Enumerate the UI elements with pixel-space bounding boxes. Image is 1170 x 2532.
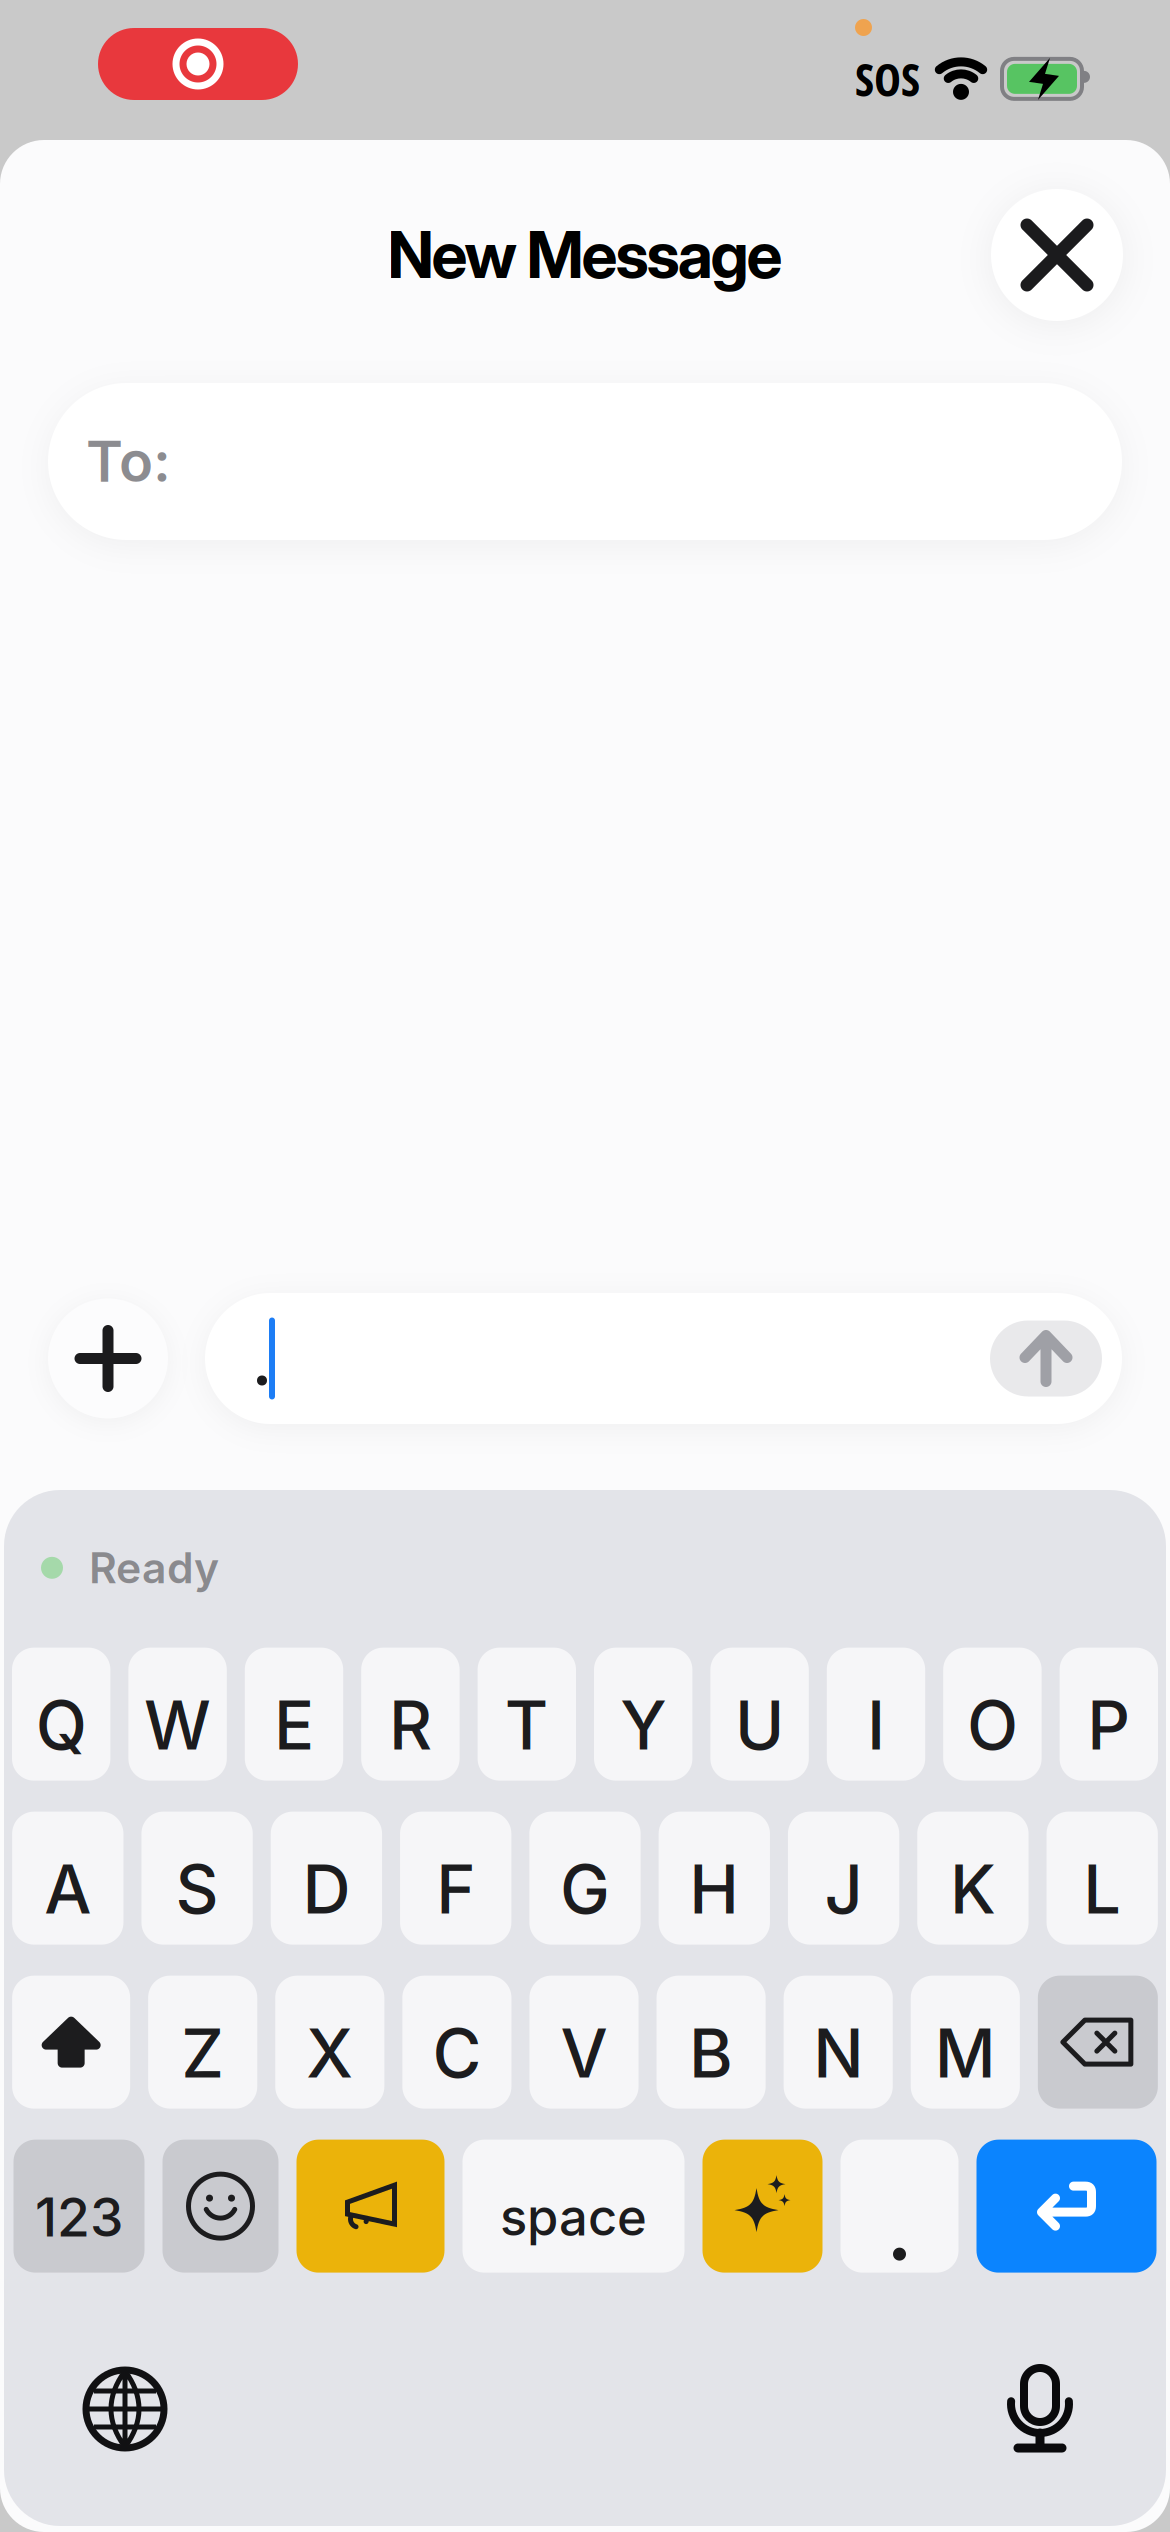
- button[interactable]: [98, 28, 298, 100]
- staticText: N: [813, 2013, 863, 2093]
- staticText: O: [967, 1685, 1018, 1765]
- staticText: U: [735, 1685, 784, 1765]
- button[interactable]: S: [141, 1812, 253, 1945]
- button[interactable]: [1038, 1976, 1158, 2109]
- button[interactable]: A: [12, 1812, 123, 1945]
- button[interactable]: G: [529, 1812, 641, 1945]
- button[interactable]: U: [710, 1648, 809, 1781]
- staticText: H: [689, 1849, 739, 1929]
- button[interactable]: W: [128, 1648, 227, 1781]
- button[interactable]: [990, 1320, 1102, 1396]
- button[interactable]: B: [657, 1976, 766, 2109]
- staticText: Q: [36, 1685, 87, 1765]
- button[interactable]: 123: [13, 2140, 144, 2273]
- staticText: M: [935, 2013, 996, 2093]
- staticText: D: [302, 1849, 350, 1929]
- button[interactable]: Y: [594, 1648, 692, 1781]
- staticText: I: [867, 1685, 885, 1765]
- button[interactable]: [162, 2140, 278, 2273]
- staticText: F: [436, 1849, 475, 1929]
- button[interactable]: [702, 2140, 822, 2273]
- staticText: W: [144, 1685, 211, 1765]
- button[interactable]: [12, 1976, 130, 2109]
- staticText: T: [505, 1685, 549, 1765]
- staticText: S: [176, 1849, 219, 1929]
- button[interactable]: M: [911, 1976, 1020, 2109]
- button[interactable]: X: [275, 1976, 384, 2109]
- button[interactable]: E: [245, 1648, 343, 1781]
- button[interactable]: J: [788, 1812, 899, 1945]
- staticText: A: [44, 1849, 91, 1929]
- staticText: J: [825, 1849, 863, 1929]
- button[interactable]: [991, 189, 1123, 321]
- button[interactable]: space: [462, 2140, 684, 2273]
- button[interactable]: H: [659, 1812, 770, 1945]
- staticText: X: [306, 2013, 353, 2093]
- staticText: SOS: [855, 48, 920, 110]
- staticText: 123: [35, 2185, 123, 2249]
- button[interactable]: [840, 2140, 958, 2273]
- staticText: V: [560, 2013, 607, 2093]
- staticText: space: [500, 2186, 647, 2248]
- button[interactable]: F: [400, 1812, 511, 1945]
- button[interactable]: [48, 1298, 168, 1418]
- button[interactable]: To:: [48, 383, 1122, 540]
- button[interactable]: D: [271, 1812, 382, 1945]
- staticText: Z: [181, 2013, 224, 2093]
- staticText: C: [432, 2013, 481, 2093]
- staticText: L: [1083, 1849, 1121, 1929]
- button[interactable]: V: [529, 1976, 639, 2109]
- button[interactable]: P: [1060, 1648, 1158, 1781]
- button[interactable]: R: [361, 1648, 460, 1781]
- staticText: New Message: [387, 216, 782, 293]
- staticText: K: [950, 1849, 996, 1929]
- button[interactable]: [85, 2369, 165, 2449]
- button[interactable]: L: [1046, 1812, 1158, 1945]
- button[interactable]: N: [784, 1976, 893, 2109]
- staticText: E: [274, 1685, 314, 1765]
- staticText: G: [560, 1849, 610, 1929]
- staticText: R: [389, 1685, 432, 1765]
- button[interactable]: K: [917, 1812, 1028, 1945]
- staticText: P: [1087, 1685, 1130, 1765]
- staticText: Ready: [89, 1542, 219, 1594]
- button[interactable]: C: [402, 1976, 511, 2109]
- button[interactable]: I: [827, 1648, 925, 1781]
- button[interactable]: Q: [12, 1648, 110, 1781]
- staticText: To:: [86, 428, 171, 495]
- button[interactable]: [296, 2140, 444, 2273]
- button[interactable]: [976, 2140, 1156, 2273]
- staticText: B: [689, 2013, 733, 2093]
- button[interactable]: Z: [148, 1976, 257, 2109]
- staticText: Y: [620, 1685, 666, 1765]
- button[interactable]: T: [478, 1648, 576, 1781]
- button[interactable]: O: [943, 1648, 1042, 1781]
- button[interactable]: [1008, 2364, 1072, 2454]
